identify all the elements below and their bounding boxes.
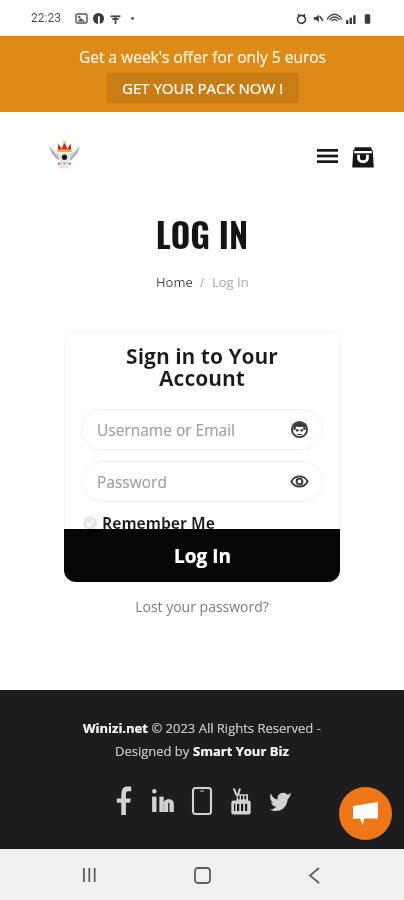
button[interactable]: Password	[81, 461, 323, 502]
button[interactable]: Recents	[68, 853, 112, 897]
button[interactable]: Menu	[307, 143, 347, 169]
button[interactable]: Mobile	[190, 786, 214, 815]
staticText: Designed by	[115, 742, 193, 760]
staticText: Sign in to Your Account	[102, 342, 302, 392]
button[interactable]: Back	[292, 853, 336, 897]
button[interactable]: Cart	[346, 142, 380, 170]
button[interactable]: Username or Email	[81, 409, 323, 450]
button[interactable]: Lost your password?	[0, 597, 404, 616]
staticText: Winizi.net	[83, 719, 148, 737]
staticText: Password	[97, 471, 167, 492]
button[interactable]: Remember Me	[83, 512, 340, 533]
button[interactable]: Facebook	[112, 786, 136, 815]
staticText: 22:23	[31, 11, 61, 25]
button[interactable]: GET YOUR PACK NOW !	[107, 73, 299, 103]
button[interactable]: Home	[180, 853, 224, 897]
staticText: Smart Your Biz	[193, 742, 289, 760]
staticText: Get a week's offer for only 5 euros	[79, 46, 326, 67]
button[interactable]: Home	[156, 273, 193, 291]
staticText: GET YOUR PACK NOW !	[122, 78, 284, 98]
button[interactable]: Log In	[64, 529, 340, 582]
button[interactable]: Twitter	[268, 786, 292, 815]
button[interactable]: LinkedIn	[151, 786, 175, 815]
staticText: © 2023 All Rights Reserved -	[148, 719, 321, 737]
staticText: LOG IN	[0, 208, 404, 258]
staticText: Remember Me	[102, 512, 215, 533]
staticText: Log In	[212, 273, 249, 291]
staticText: Username or Email	[97, 419, 236, 440]
button[interactable]: Winizi home	[49, 141, 80, 169]
staticText: Log In	[174, 543, 231, 569]
button[interactable]: YouTube	[229, 786, 253, 815]
staticText: /	[193, 273, 212, 291]
button[interactable]: Chat	[339, 787, 392, 840]
